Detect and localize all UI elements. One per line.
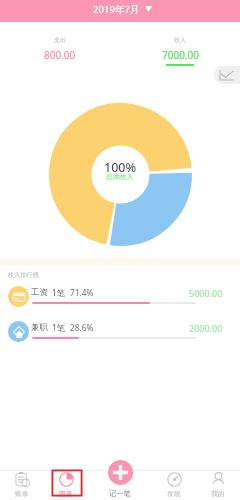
staticText: 2019年7月: [93, 3, 140, 16]
button[interactable]: Add record: [88, 460, 152, 498]
button[interactable]: 账单: [0, 470, 44, 500]
button[interactable]: 发现: [152, 470, 196, 500]
staticText: 图表: [59, 489, 73, 498]
staticText: 5000.00: [189, 287, 223, 299]
staticText: 28.6%: [70, 322, 94, 333]
button[interactable]: 我的: [196, 470, 240, 500]
staticText: 2000.00: [189, 322, 223, 334]
staticText: 兼职: [31, 322, 48, 333]
staticText: 账单: [15, 489, 29, 498]
staticText: 发现: [167, 489, 181, 498]
staticText: 总体收入: [106, 172, 134, 181]
staticText: 7000.00: [162, 48, 199, 62]
staticText: 我的: [211, 489, 225, 498]
button[interactable]: 工资: [0, 282, 240, 314]
button[interactable]: 图表: [44, 470, 88, 500]
staticText: 800.00: [44, 48, 76, 62]
staticText: 收入排行榜: [8, 271, 39, 279]
button[interactable]: 兼职: [0, 317, 240, 349]
staticText: 工资: [31, 287, 48, 298]
staticText: 记一笔: [109, 489, 131, 498]
staticText: 收入: [174, 36, 186, 44]
staticText: 71.4%: [70, 287, 94, 298]
staticText: 支出: [54, 36, 66, 44]
staticText: 1笔: [52, 322, 66, 333]
button[interactable]: Trend chart: [214, 66, 240, 84]
button[interactable]: 2019年7月: [87, 0, 158, 20]
staticText: 100%: [104, 159, 137, 176]
staticText: 1笔: [52, 287, 66, 298]
